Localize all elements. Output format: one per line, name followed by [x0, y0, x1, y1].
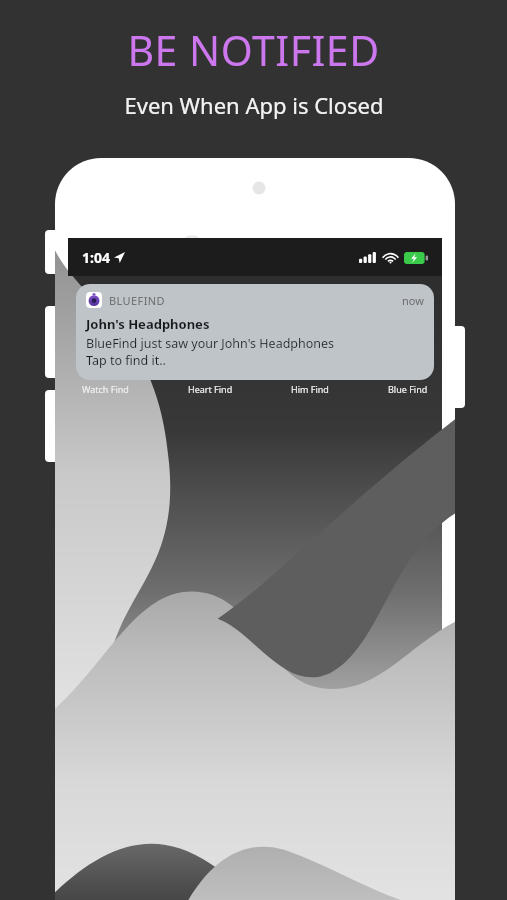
staticText: Blue Find — [388, 383, 428, 395]
other: BlueFind app icon — [86, 292, 102, 308]
staticText: Him Find — [291, 383, 329, 395]
staticText: Watch Find — [82, 383, 129, 395]
staticText: Heart Find — [188, 383, 233, 395]
staticText: BE NOTIFIED — [127, 22, 380, 78]
staticText: Even When App is Closed — [124, 90, 384, 120]
staticText: BLUEFIND — [109, 293, 165, 308]
staticText: 1:04 — [82, 248, 110, 267]
staticText: BlueFind just saw your John's Headphones… — [86, 335, 335, 368]
staticText: now — [402, 293, 424, 308]
staticText: John's Headphones — [86, 315, 210, 333]
button[interactable]: BlueFind app icon — [76, 284, 434, 380]
